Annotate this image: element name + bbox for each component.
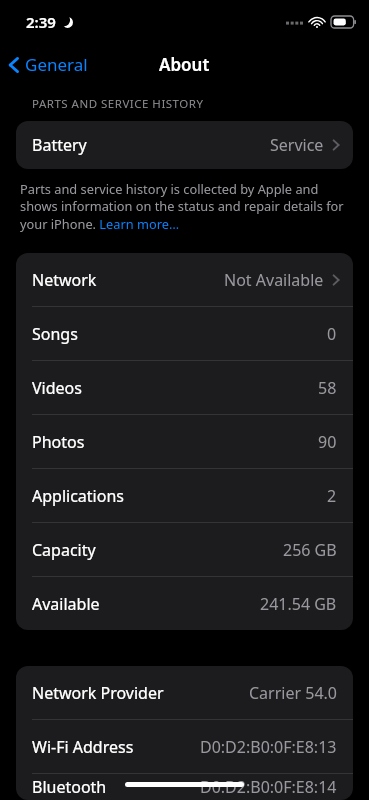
staticText: 0	[327, 323, 337, 345]
button[interactable]: Photos	[16, 415, 353, 468]
staticText: Network	[32, 269, 97, 291]
staticText: Songs	[32, 323, 78, 345]
staticText: Photos	[32, 431, 85, 453]
staticText: Available	[32, 593, 100, 615]
other: More	[332, 138, 340, 152]
staticText: Battery	[32, 134, 87, 156]
staticText: 256 GB	[283, 539, 337, 561]
staticText: Service	[270, 134, 324, 156]
button[interactable]: Wi-Fi Address	[16, 720, 353, 773]
staticText: Bluetooth	[32, 776, 107, 798]
button[interactable]: Applications	[16, 469, 353, 522]
button[interactable]: Bluetooth	[16, 774, 353, 800]
button[interactable]: General	[0, 48, 100, 81]
button[interactable]: Network	[16, 253, 353, 306]
staticText: Not Available	[224, 269, 324, 291]
staticText: Network Provider	[32, 682, 164, 704]
staticText: D0:D2:B0:0F:E8:13	[200, 736, 337, 758]
staticText: 2:39	[26, 12, 56, 32]
staticText: 241.54 GB	[260, 593, 337, 615]
staticText: Videos	[32, 377, 82, 399]
staticText: Applications	[32, 485, 124, 507]
button[interactable]: Available	[16, 577, 353, 630]
staticText: 58	[318, 377, 337, 399]
staticText: General	[25, 53, 88, 76]
button[interactable]: Videos	[16, 361, 353, 414]
staticText: Parts and service history is collected b…	[20, 180, 349, 232]
button[interactable]: Network Provider	[16, 666, 353, 719]
staticText: 90	[318, 431, 337, 453]
staticText: PARTS AND SERVICE HISTORY	[32, 96, 204, 112]
staticText: Capacity	[32, 539, 96, 561]
button[interactable]: Songs	[16, 307, 353, 360]
staticText: 2	[327, 485, 337, 507]
other: More	[332, 273, 340, 287]
staticText: About	[159, 53, 210, 76]
staticText: D0:D2:B0:0F:E8:14	[200, 776, 337, 798]
staticText: Wi-Fi Address	[32, 736, 134, 758]
staticText: Carrier 54.0	[249, 682, 337, 704]
button[interactable]: Capacity	[16, 523, 353, 576]
button[interactable]: Battery	[16, 121, 353, 169]
